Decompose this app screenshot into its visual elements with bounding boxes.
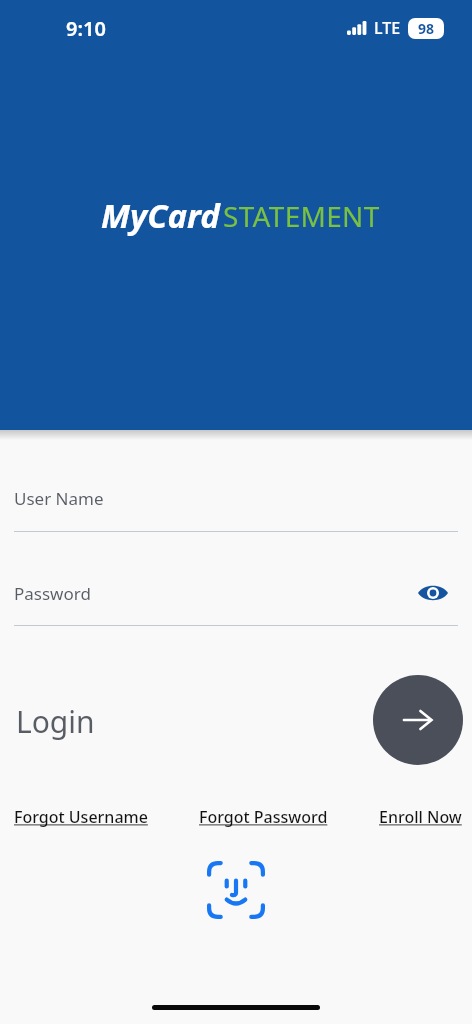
- button[interactable]: Enroll Now: [379, 806, 462, 828]
- staticText: Login: [16, 701, 95, 742]
- button[interactable]: Forgot Password: [199, 806, 328, 828]
- staticText: User Name: [14, 487, 104, 510]
- staticText: Forgot Password: [199, 806, 328, 828]
- staticText: Password: [14, 582, 91, 605]
- button[interactable]: Show password: [408, 572, 458, 614]
- button[interactable]: Forgot Username: [14, 806, 148, 828]
- button[interactable]: Login: [10, 698, 101, 744]
- staticText: 9:10: [66, 15, 106, 42]
- staticText: MyCard: [101, 193, 220, 238]
- staticText: Enroll Now: [379, 806, 462, 828]
- staticText: LTE: [374, 17, 401, 39]
- button[interactable]: Submit login: [373, 675, 463, 765]
- staticText: STATEMENT: [223, 197, 380, 235]
- staticText: Forgot Username: [14, 806, 148, 828]
- button[interactable]: Sign in with Face ID: [203, 857, 269, 923]
- staticText: 98: [418, 19, 435, 38]
